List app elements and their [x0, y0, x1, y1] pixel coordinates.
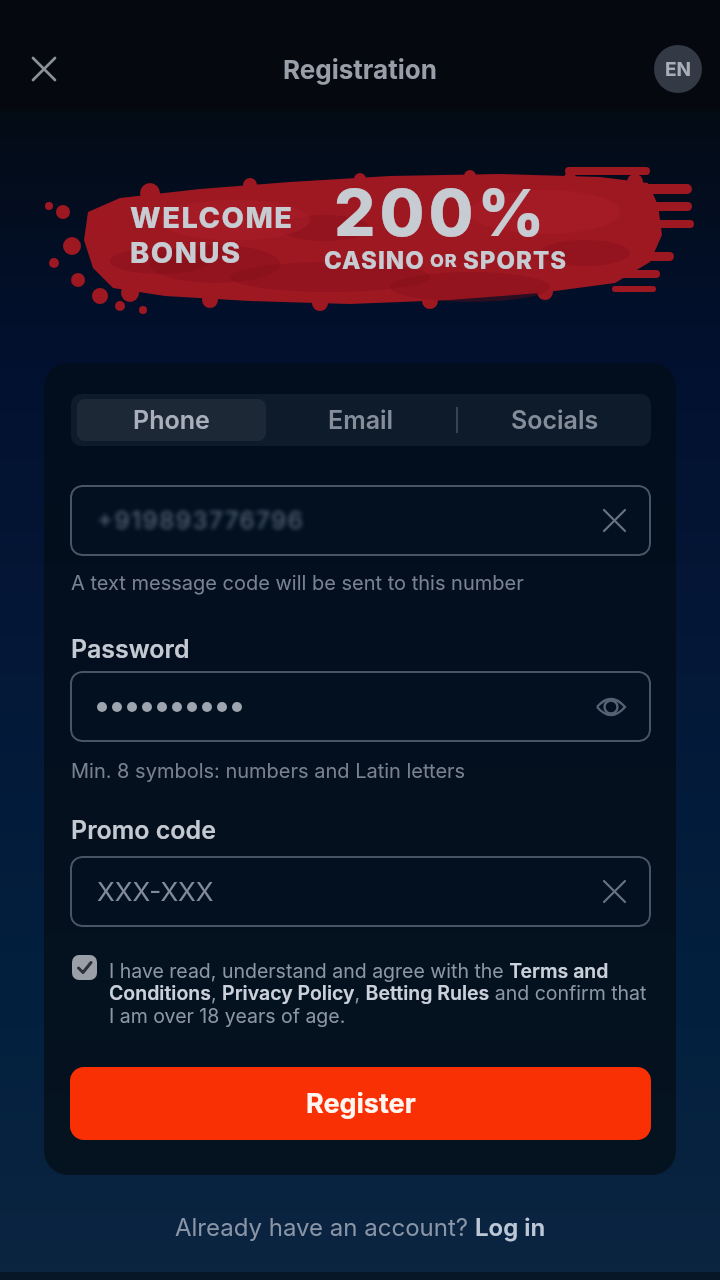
staticText: Email [328, 405, 394, 435]
staticText: Password [71, 634, 190, 664]
staticText: WELCOME [130, 200, 294, 235]
button[interactable]: Already have an account? [0, 1208, 720, 1246]
button[interactable]: Phone [77, 399, 266, 441]
staticText: Min. 8 symbols: numbers and Latin letter… [71, 759, 466, 783]
staticText: BONUS [130, 235, 242, 270]
staticText: A text message code will be sent to this… [71, 571, 524, 595]
staticText: Registration [283, 54, 437, 85]
staticText: 200% [334, 173, 549, 252]
button[interactable]: Email [266, 394, 456, 446]
staticText: XXX-XXX [97, 876, 214, 907]
button[interactable]: +919893776796 [70, 485, 651, 556]
staticText: +919893776796 [97, 506, 305, 535]
staticText: Already have an account? [175, 1213, 475, 1242]
staticText: CASINO [324, 246, 425, 275]
button[interactable]: Register [70, 1067, 651, 1140]
staticText: Phone [133, 405, 210, 435]
button[interactable] [20, 45, 68, 93]
staticText: Register [306, 1087, 416, 1120]
staticText: EN [665, 58, 692, 81]
button[interactable]: EN [654, 45, 702, 93]
staticText: Socials [511, 405, 599, 435]
staticText: OR [425, 250, 463, 272]
button[interactable]: XXX-XXX [70, 856, 651, 927]
staticText: SPORTS [463, 246, 568, 275]
staticText: Log in [475, 1213, 546, 1242]
staticText: Promo code [71, 815, 216, 845]
button[interactable] [70, 671, 651, 742]
button[interactable]: I have read, understand and agree with t… [109, 959, 657, 1028]
button[interactable] [72, 955, 97, 980]
button[interactable]: Socials [458, 394, 651, 446]
